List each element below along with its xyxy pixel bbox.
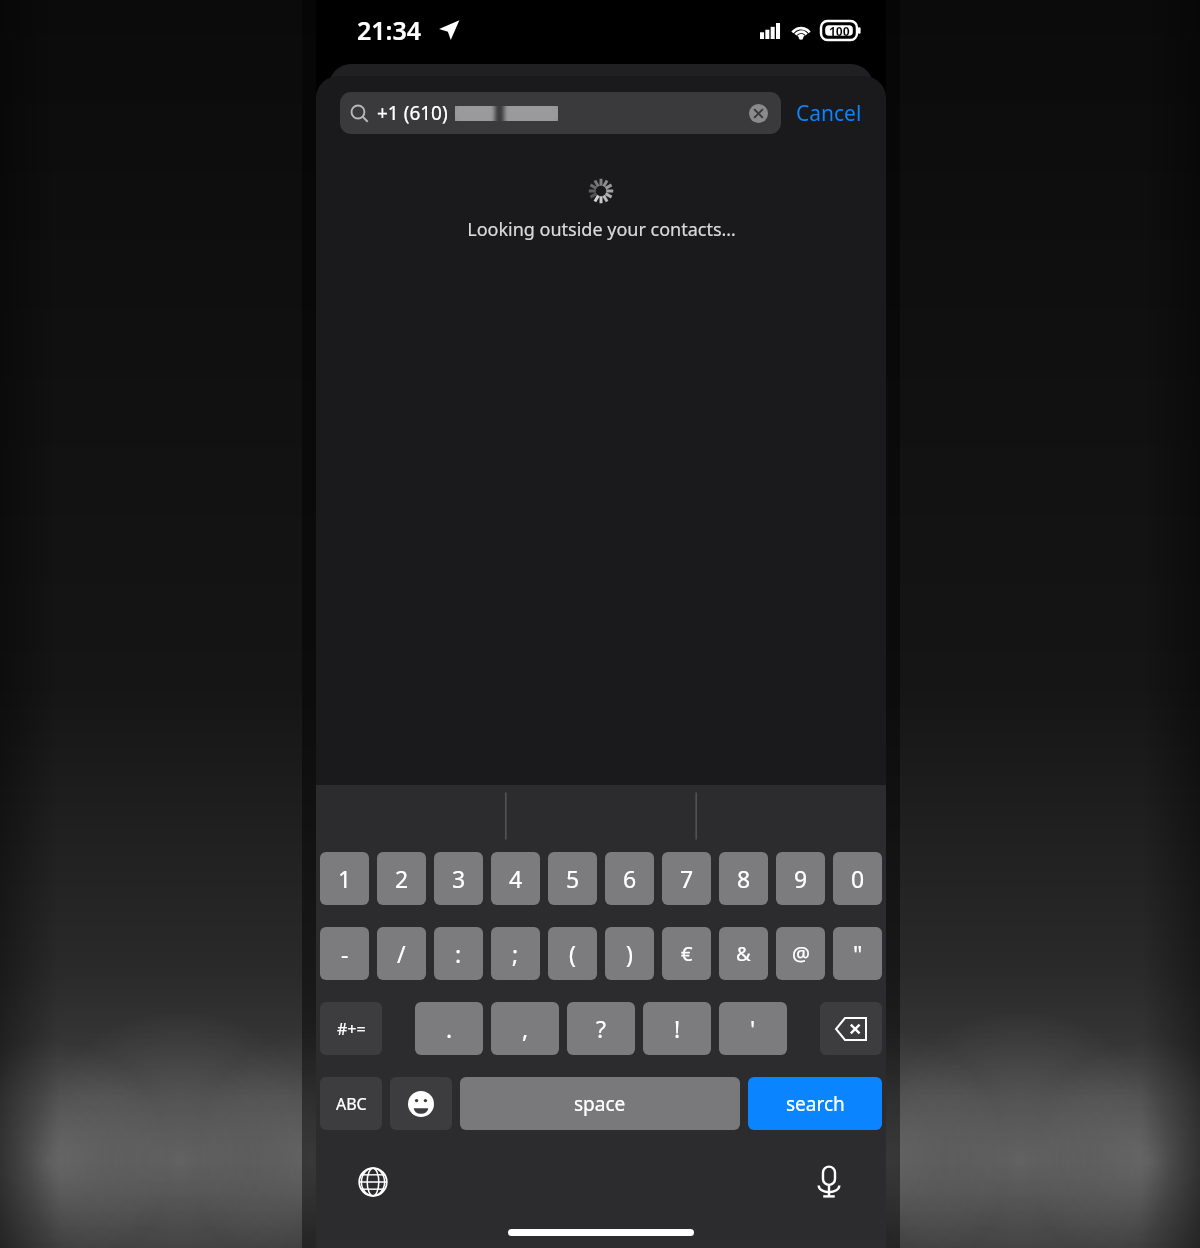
button[interactable]: € <box>662 927 711 980</box>
button[interactable]: , <box>491 1002 559 1055</box>
staticText: 7 <box>680 863 694 894</box>
staticText: - <box>341 938 349 969</box>
button[interactable]: ' <box>719 1002 787 1055</box>
staticText: @ <box>792 940 810 967</box>
staticText: 4 <box>509 863 523 894</box>
button[interactable]: 1 <box>320 852 369 905</box>
button[interactable]: : <box>434 927 483 980</box>
staticText: 9 <box>794 863 808 894</box>
button[interactable]: #+= <box>320 1002 382 1055</box>
staticText: . <box>446 1013 453 1044</box>
button[interactable]: 3 <box>434 852 483 905</box>
button[interactable]: " <box>833 927 882 980</box>
staticText: : <box>455 938 462 969</box>
button[interactable]: ! <box>643 1002 711 1055</box>
staticText: / <box>397 938 406 969</box>
staticText: 6 <box>623 863 637 894</box>
staticText: #+= <box>337 1018 366 1040</box>
button[interactable]: / <box>377 927 426 980</box>
staticText: 0 <box>851 863 865 894</box>
staticText: ABC <box>336 1093 367 1115</box>
button[interactable]: ? <box>567 1002 635 1055</box>
staticText: space <box>574 1091 626 1117</box>
button[interactable]: ) <box>605 927 654 980</box>
button[interactable]: 7 <box>662 852 711 905</box>
staticText: Cancel <box>796 99 862 128</box>
staticText: " <box>853 938 863 969</box>
button[interactable]: 0 <box>833 852 882 905</box>
button[interactable]: 2 <box>377 852 426 905</box>
staticText: 5 <box>566 863 580 894</box>
button[interactable]: 8 <box>719 852 768 905</box>
staticText: 21:34 <box>357 13 422 47</box>
button[interactable]: - <box>320 927 369 980</box>
staticText: search <box>786 1091 845 1117</box>
button[interactable]: 9 <box>776 852 825 905</box>
staticText: 2 <box>395 863 409 894</box>
staticText: ; <box>512 938 519 969</box>
button[interactable]: Dictation <box>808 1161 850 1203</box>
button[interactable]: +1 (610) <box>340 92 781 134</box>
button[interactable]: Cancel <box>794 93 864 134</box>
staticText: ' <box>750 1013 756 1044</box>
staticText: 100 <box>829 23 850 39</box>
button[interactable]: . <box>415 1002 483 1055</box>
button[interactable]: search <box>748 1077 882 1130</box>
staticText: & <box>736 940 751 967</box>
staticText: , <box>522 1013 529 1044</box>
button[interactable]: space <box>460 1077 740 1130</box>
staticText: ) <box>626 938 633 969</box>
button[interactable]: & <box>719 927 768 980</box>
button[interactable]: ; <box>491 927 540 980</box>
button[interactable]: 4 <box>491 852 540 905</box>
button[interactable]: ( <box>548 927 597 980</box>
staticText: +1 (610) <box>377 100 448 126</box>
button[interactable]: Emoji <box>390 1077 452 1130</box>
button[interactable]: 6 <box>605 852 654 905</box>
staticText: 8 <box>737 863 751 894</box>
button[interactable]: Clear text <box>745 100 771 126</box>
button[interactable]: 5 <box>548 852 597 905</box>
staticText: Looking outside your contacts… <box>467 217 736 242</box>
staticText: ( <box>569 938 576 969</box>
staticText: 1 <box>338 863 352 894</box>
staticText: € <box>681 940 693 967</box>
button[interactable]: @ <box>776 927 825 980</box>
staticText: 3 <box>452 863 466 894</box>
staticText: ! <box>674 1013 681 1044</box>
button[interactable]: ABC <box>320 1077 382 1130</box>
button[interactable]: Switch keyboard language <box>352 1161 394 1203</box>
button[interactable]: Backspace <box>820 1002 882 1055</box>
staticText: ? <box>596 1013 606 1044</box>
